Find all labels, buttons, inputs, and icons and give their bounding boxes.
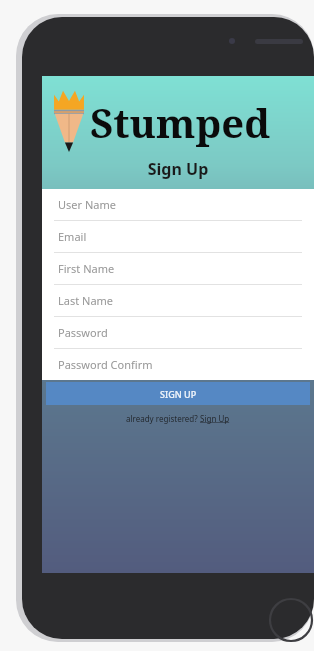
staticText: Sign Up bbox=[200, 413, 230, 424]
button[interactable]: Last Name bbox=[42, 285, 314, 316]
staticText: First Name bbox=[58, 261, 115, 276]
staticText: Stumped bbox=[90, 95, 271, 149]
staticText: already registered? bbox=[126, 413, 200, 424]
button[interactable]: Password bbox=[42, 317, 314, 348]
other: Stumped logo bbox=[52, 88, 86, 156]
staticText: SIGN UP bbox=[160, 388, 197, 400]
button[interactable]: Email bbox=[42, 221, 314, 252]
staticText: Password bbox=[58, 325, 108, 340]
button[interactable]: Sign Up bbox=[200, 413, 230, 424]
staticText: Email bbox=[58, 229, 87, 244]
button[interactable]: Password Confirm bbox=[42, 349, 314, 380]
staticText: Password Confirm bbox=[58, 357, 153, 372]
staticText: User Name bbox=[58, 197, 116, 212]
staticText: Last Name bbox=[58, 293, 114, 308]
button[interactable]: First Name bbox=[42, 253, 314, 284]
button[interactable]: User Name bbox=[42, 189, 314, 220]
staticText: Sign Up bbox=[42, 158, 314, 180]
button[interactable]: SIGN UP bbox=[46, 382, 310, 405]
